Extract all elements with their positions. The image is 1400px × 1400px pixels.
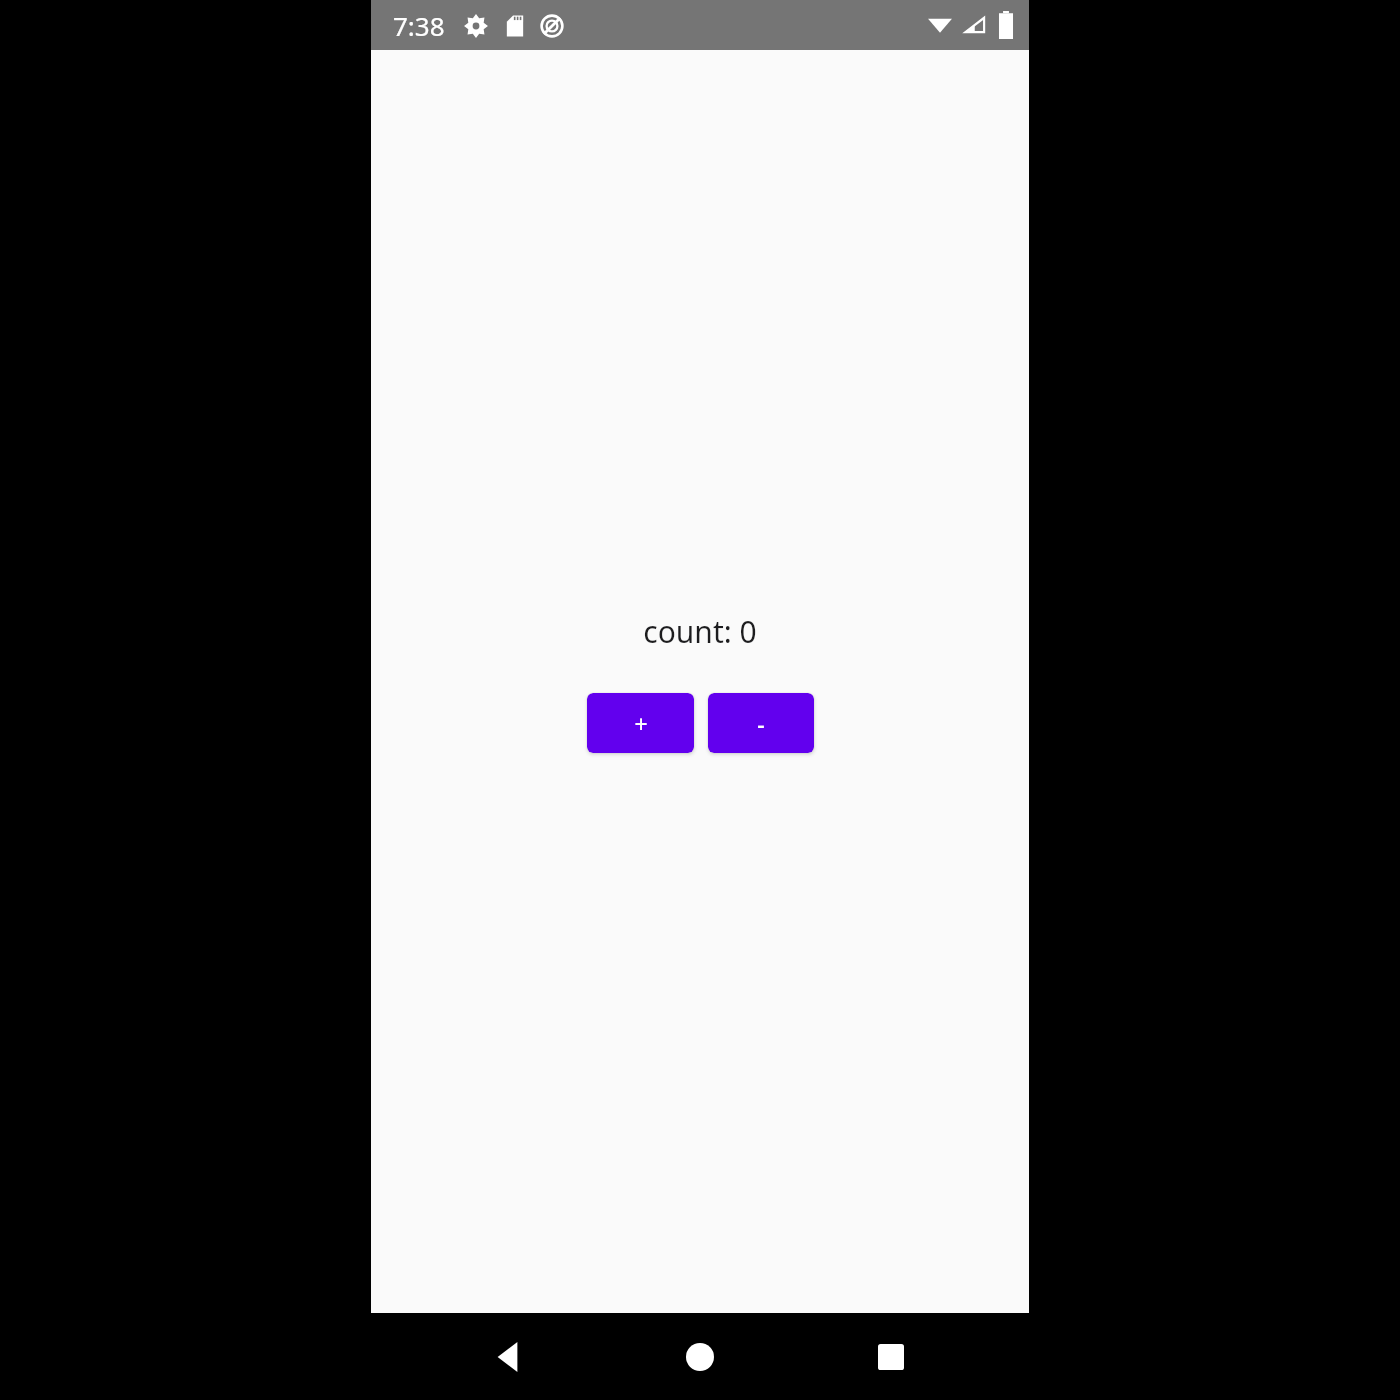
button[interactable]: Decrement	[708, 693, 814, 753]
staticText: -	[757, 708, 765, 739]
staticText: +	[634, 708, 648, 739]
button[interactable]: Recent apps	[852, 1318, 930, 1396]
staticText: count: 0	[643, 611, 757, 652]
button[interactable]: Home	[661, 1318, 739, 1396]
button[interactable]: Back	[470, 1318, 548, 1396]
staticText: 7:38	[393, 8, 445, 43]
button[interactable]: Increment	[587, 693, 694, 753]
